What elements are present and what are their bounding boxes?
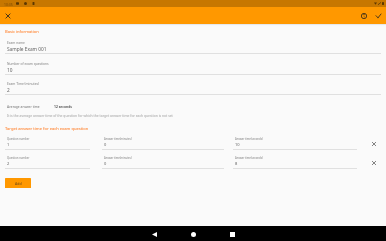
staticText: Answer time(minutes): [104, 137, 132, 141]
staticText: Answer time(seconds): [235, 137, 263, 141]
button[interactable]: Add: [5, 178, 31, 188]
staticText: 12 seconds: [54, 104, 72, 108]
staticText: 8: [235, 161, 238, 166]
button[interactable]: Help: [358, 10, 370, 22]
staticText: Answer time(seconds): [235, 156, 263, 160]
button[interactable]: Close: [2, 10, 14, 22]
button[interactable]: Delete row: [368, 157, 380, 169]
staticText: 1: [7, 142, 10, 147]
staticText: 10: [235, 142, 240, 147]
staticText: 2: [7, 161, 10, 166]
staticText: Number of exam questions: [7, 62, 49, 66]
button[interactable]: Delete row: [368, 138, 380, 150]
staticText: Answer time(minutes): [104, 156, 132, 160]
staticText: 10:35: [4, 2, 13, 7]
staticText: Average answer time: [7, 104, 40, 108]
button[interactable]: Recents: [222, 227, 242, 241]
staticText: It is the average answer time of the que…: [7, 113, 173, 118]
staticText: Exam Time (minutes): [7, 82, 40, 86]
button[interactable]: Save: [372, 10, 384, 22]
staticText: 10: [7, 67, 13, 73]
staticText: Sample Exam 001: [7, 46, 47, 52]
staticText: 0: [104, 161, 107, 166]
button[interactable]: Home: [183, 227, 203, 241]
staticText: 2: [7, 87, 10, 93]
staticText: Question number: [7, 156, 30, 160]
button[interactable]: Back: [144, 227, 164, 241]
staticText: Basic information: [5, 29, 39, 35]
staticText: Add: [15, 181, 22, 186]
staticText: Question number: [7, 137, 30, 141]
staticText: Target answer time for each exam questio…: [5, 126, 89, 132]
staticText: 0: [104, 142, 107, 147]
staticText: Exam name: [7, 41, 25, 45]
